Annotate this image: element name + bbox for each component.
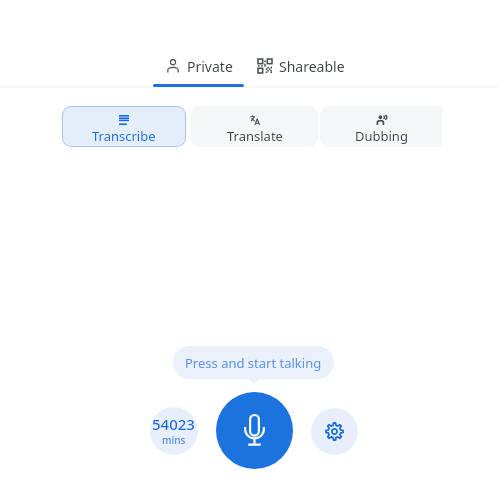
button[interactable]: Dubbing <box>320 106 442 147</box>
staticText: Translate <box>227 127 283 145</box>
staticText: Private <box>187 57 233 76</box>
button[interactable]: Translate <box>191 106 318 147</box>
button[interactable]: Private <box>160 48 240 82</box>
button[interactable]: 54023 <box>150 407 198 455</box>
staticText: Dubbing <box>355 127 408 145</box>
button[interactable]: Record <box>216 392 293 469</box>
staticText: 54023 <box>152 414 195 434</box>
staticText: Press and start talking <box>185 354 322 372</box>
staticText: mins <box>162 433 186 447</box>
staticText: Transcribe <box>92 127 156 145</box>
button[interactable]: Settings <box>311 408 358 455</box>
staticText: Shareable <box>279 57 345 76</box>
button[interactable]: Shareable <box>251 48 349 82</box>
button[interactable]: Transcribe <box>62 106 186 147</box>
